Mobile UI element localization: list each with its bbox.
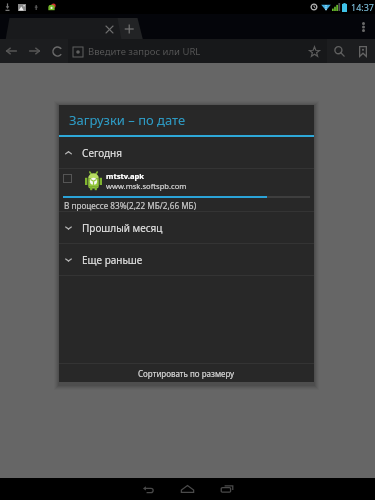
button[interactable]: Close tab [101,18,118,40]
button[interactable]: Select download [59,169,314,196]
button[interactable]: More options [351,14,375,39]
button[interactable]: Еще раньше [59,244,314,275]
button[interactable]: Recents [212,478,241,500]
staticText: Еще раньше [82,253,143,267]
button[interactable]: Bookmark [302,39,327,63]
button[interactable]: Сортировать по размеру [59,364,314,382]
staticText: mtstv.apk [106,171,145,181]
button[interactable]: Сегодня [59,137,314,168]
staticText: www.msk.softspb.com [106,181,187,191]
button[interactable]: Search [327,39,351,63]
button[interactable]: Введите запрос или URL [68,39,301,63]
staticText: Прошлый месяц [82,221,163,235]
button[interactable]: Forward [23,39,46,63]
button[interactable]: Прошлый месяц [59,212,314,243]
button[interactable]: Bookmarks [351,39,375,63]
button[interactable]: New tab [117,18,143,40]
button[interactable]: Reload [46,39,69,63]
button[interactable]: Home [173,478,202,500]
staticText: 14:37 [351,1,375,13]
staticText: Сортировать по размеру [138,368,235,379]
staticText: Сегодня [82,146,123,160]
button[interactable]: Back [0,39,23,63]
button[interactable]: Select download [63,174,72,183]
button[interactable] [0,18,123,40]
staticText: Введите запрос или URL [88,45,201,58]
button[interactable]: Back [134,478,163,500]
staticText: Загрузки – по дате [69,111,186,129]
staticText: В процессе 83%(2,22 МБ/2,66 МБ) [64,200,197,211]
